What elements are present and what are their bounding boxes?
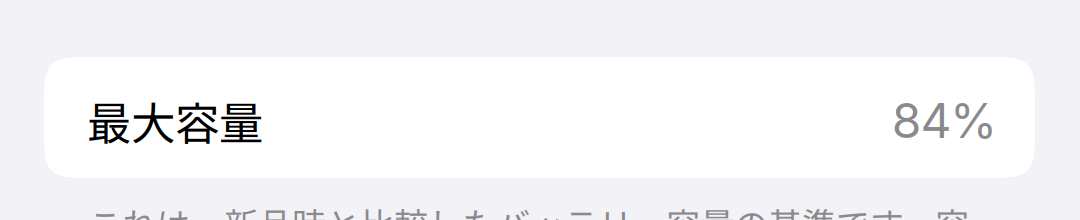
button[interactable]: 最大容量 [44,57,1035,178]
staticText: これは、新品時と比較したバッテリー容量の基準です。容 [88,198,969,220]
staticText: 84% [892,91,997,150]
staticText: 最大容量 [87,88,263,153]
